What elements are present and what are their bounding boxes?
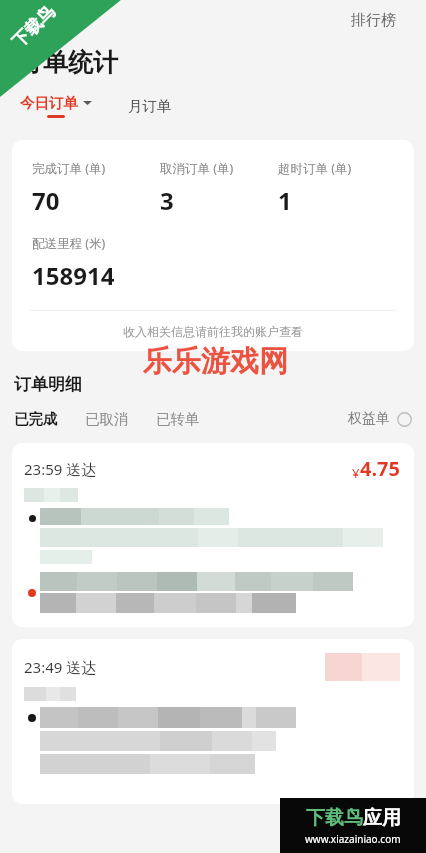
staticText: 下载鸟	[8, 1, 59, 52]
staticText: ¥	[352, 464, 360, 482]
staticText: 下载鸟	[306, 806, 363, 830]
button[interactable]: 已取消	[85, 407, 129, 431]
button[interactable]: 排行榜	[347, 7, 400, 34]
staticText: www.xiazainiao.com	[305, 832, 401, 846]
staticText: 158914	[32, 259, 115, 292]
staticText: 23:49 送达	[24, 657, 97, 677]
staticText: 70	[32, 184, 60, 217]
button[interactable]: 今日订单	[18, 92, 94, 120]
button[interactable]: 已完成	[14, 407, 58, 431]
button[interactable]: 月订单	[124, 93, 176, 119]
staticText: 3	[160, 184, 174, 217]
staticText: 1	[278, 184, 292, 217]
staticText: 订单统计	[18, 47, 118, 78]
staticText: 收入相关信息请前往我的账户查看	[123, 324, 303, 339]
button[interactable]: 23:59 送达	[12, 443, 414, 627]
staticText: 乐乐游戏网	[143, 343, 288, 380]
button[interactable]: 权益单	[348, 407, 412, 431]
staticText: 4.75	[360, 455, 400, 482]
staticText: 完成订单 (单)	[32, 160, 106, 177]
staticText: 已取消	[85, 410, 129, 428]
button[interactable]: 已转单	[156, 407, 200, 431]
staticText: 月订单	[128, 97, 172, 115]
staticText: 应用	[363, 806, 401, 830]
staticText: 已转单	[156, 410, 200, 428]
staticText: 23:59 送达	[24, 459, 97, 479]
staticText: 超时订单 (单)	[278, 160, 352, 177]
staticText: 排行榜	[351, 11, 396, 30]
staticText: 订单明细	[14, 374, 82, 395]
button[interactable]: 完成订单 (单)	[12, 140, 414, 351]
button[interactable]: 23:49 送达	[12, 639, 414, 804]
staticText: 已完成	[14, 410, 58, 428]
staticText: 取消订单 (单)	[160, 160, 234, 177]
staticText: 今日订单	[20, 94, 78, 112]
staticText: 权益单	[348, 410, 390, 428]
staticText: 配送里程 (米)	[32, 235, 106, 252]
